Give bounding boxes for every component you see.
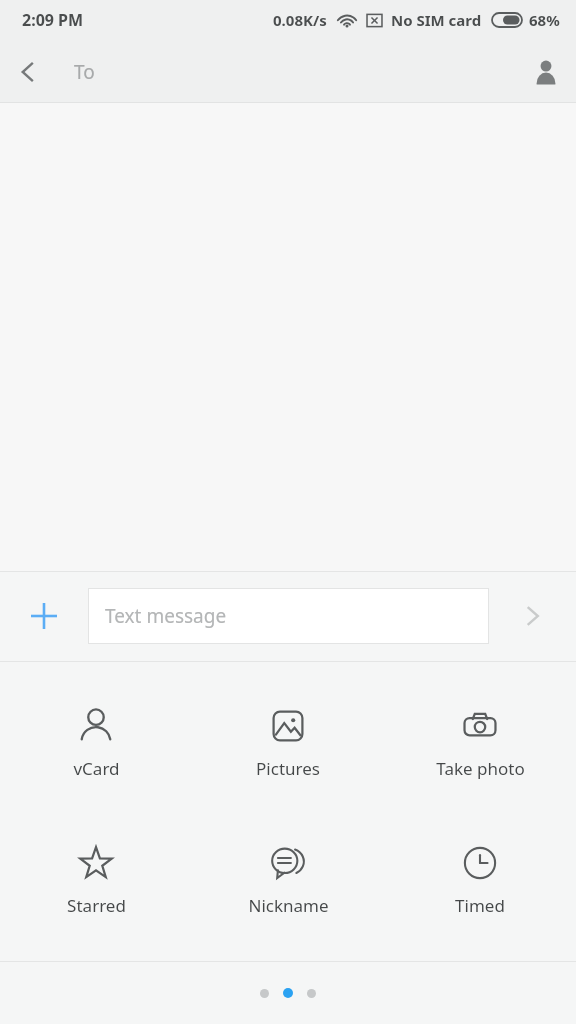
button[interactable]: Timed	[384, 799, 576, 961]
staticText: vCard	[73, 757, 120, 780]
staticText: Starred	[67, 894, 126, 917]
button[interactable]: Back	[0, 44, 56, 100]
button[interactable]: Text message	[88, 588, 489, 644]
staticText: No SIM card	[391, 10, 482, 30]
staticText: To	[74, 59, 95, 85]
staticText: Nickname	[248, 894, 329, 917]
button[interactable]: Take photo	[384, 662, 576, 799]
button[interactable]: Nickname	[192, 799, 384, 961]
staticText: Take photo	[436, 757, 525, 780]
button[interactable]: vCard	[0, 662, 192, 799]
staticText: Timed	[455, 894, 505, 917]
button[interactable]: Contacts	[516, 42, 576, 102]
button[interactable]: Add attachment	[14, 586, 74, 646]
button[interactable]: Send	[502, 585, 564, 647]
button[interactable]: Pictures	[192, 662, 384, 799]
staticText: Text message	[105, 603, 227, 629]
staticText: Pictures	[256, 757, 320, 780]
button[interactable]: Starred	[0, 799, 192, 961]
staticText: 68%	[529, 10, 560, 30]
staticText: 0.08K/s	[273, 10, 327, 30]
staticText: 2:09 PM	[22, 9, 84, 31]
